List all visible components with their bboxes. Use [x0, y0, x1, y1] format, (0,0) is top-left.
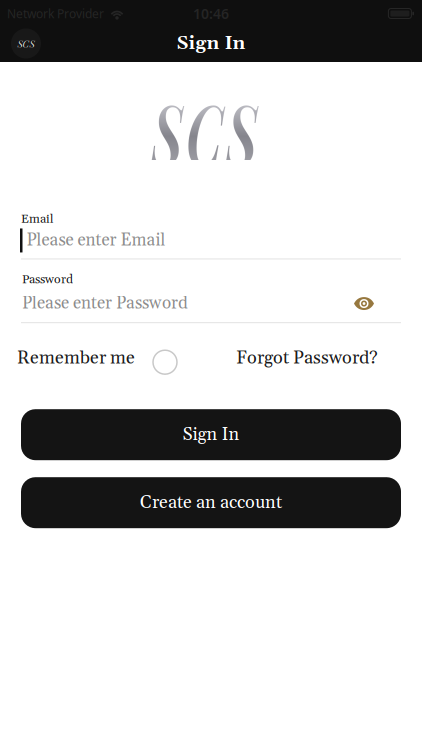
button[interactable]: Show password	[354, 297, 374, 310]
staticText: Network Provider	[7, 5, 104, 22]
button[interactable]: SCS	[11, 28, 41, 58]
staticText: Password	[22, 273, 73, 286]
button[interactable]: Forgot Password?	[236, 351, 378, 369]
staticText: Remember me	[17, 349, 135, 367]
staticText: SCS	[17, 38, 34, 49]
staticText: Sign In	[182, 425, 239, 444]
staticText: Forgot Password?	[236, 349, 378, 367]
staticText: 10:46	[193, 4, 229, 23]
staticText: Email	[21, 213, 54, 225]
button[interactable]: Sign In	[21, 409, 401, 460]
staticText: Create an account	[140, 493, 282, 512]
staticText: Please enter Email	[26, 232, 165, 249]
button[interactable]: Remember me	[17, 348, 177, 372]
button[interactable]: Create an account	[21, 477, 401, 528]
staticText: Sign In	[176, 34, 245, 53]
staticText: Please enter Password	[22, 295, 188, 312]
